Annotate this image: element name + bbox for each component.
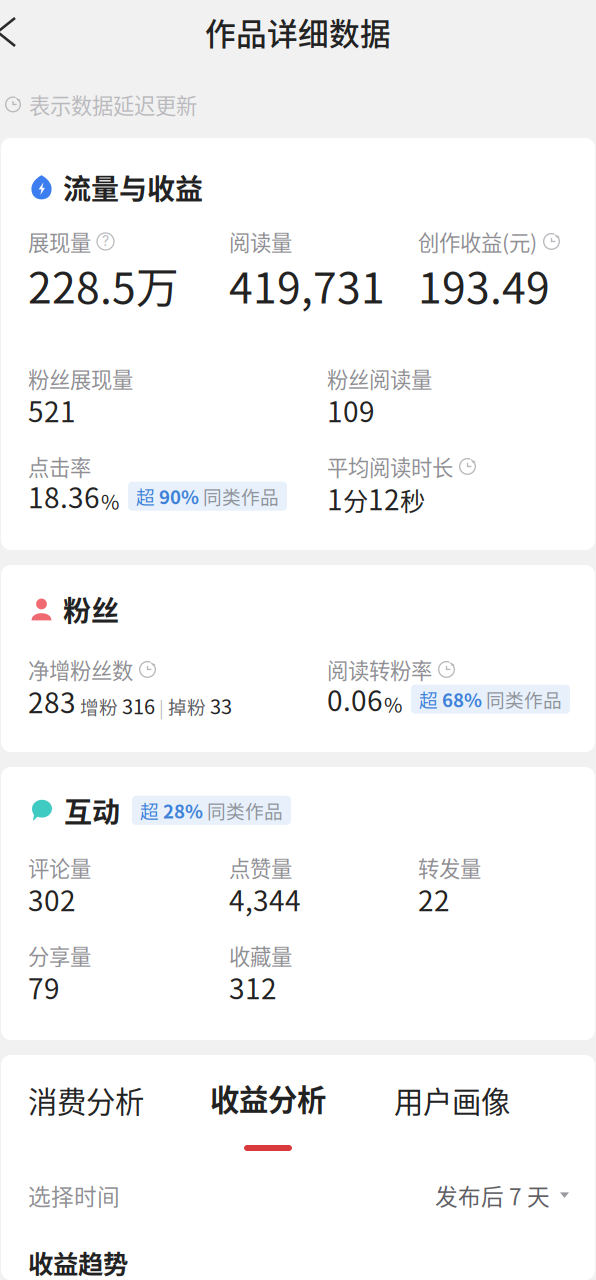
staticText: 消费分析 [28,1079,144,1121]
staticText: 超 [419,686,442,713]
staticText: 点击率 [28,451,91,482]
staticText: 流量与收益 [63,167,203,207]
staticText: 22 [418,879,450,919]
staticText: % [384,689,402,718]
staticText: 79 [28,967,60,1007]
staticText: 平均阅读时长 [327,451,453,482]
staticText: 阅读量 [229,226,292,257]
staticText: 68% [442,686,482,713]
button[interactable]: Back [0,0,46,64]
staticText: 粉丝阅读量 [327,363,432,394]
staticText: 粉丝展现量 [28,363,133,394]
staticText: 粉丝 [63,589,119,629]
staticText: 228.5万 [28,254,179,316]
staticText: 同类作品 [203,797,283,824]
staticText: 316 [118,691,155,720]
staticText: 0.06 [327,679,383,719]
staticText: 同类作品 [199,483,279,510]
staticText: ? [102,232,109,249]
staticText: 超 [140,797,163,824]
staticText: 分享量 [28,940,91,971]
staticText: 评论量 [28,852,91,883]
staticText: % [101,486,119,515]
staticText: 1 [327,478,343,518]
staticText: 净增粉丝数 [28,654,133,685]
staticText: 增粉 [76,693,118,720]
staticText: 发布后 7 天 [435,1179,550,1212]
staticText: 4,344 [229,879,301,919]
staticText: 点赞量 [229,852,292,883]
staticText: 收益分析 [210,1077,326,1119]
button[interactable]: 用户画像 [372,1068,532,1132]
staticText: 283 [28,681,76,721]
staticText: 创作收益(元) [418,226,537,257]
staticText: 表示数据延迟更新 [29,89,197,120]
staticText: 用户画像 [394,1079,510,1121]
staticText: 超 [136,483,159,510]
staticText: 秒 [400,481,425,518]
staticText: 33 [206,691,232,720]
staticText: 同类作品 [482,686,562,713]
staticText: 收益趋势 [28,1244,128,1280]
staticText: 收藏量 [229,940,292,971]
staticText: 193.49 [418,254,550,316]
staticText: 521 [28,390,76,430]
staticText: 109 [327,390,375,430]
staticText: 选择时间 [28,1179,120,1212]
staticText: 28% [163,797,203,824]
button[interactable]: 消费分析 [6,1068,166,1132]
staticText: 312 [229,967,277,1007]
button[interactable]: 收益分析 [188,1068,348,1158]
staticText: 展现量 [28,226,91,257]
staticText: 作品详细数据 [205,10,391,54]
staticText: 掉粉 [168,693,206,720]
staticText: 12 [368,478,400,518]
staticText: | [155,694,168,719]
button[interactable]: 发布后 7 天 [427,1171,577,1220]
staticText: 分 [343,481,368,518]
staticText: 阅读转粉率 [327,654,432,685]
staticText: 90% [159,483,199,510]
staticText: 互动 [64,790,120,830]
staticText: 419,731 [229,254,385,316]
staticText: 302 [28,879,76,919]
staticText: 转发量 [418,852,481,883]
staticText: 18.36 [28,476,100,516]
